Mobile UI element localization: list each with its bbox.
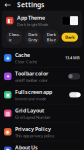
staticText: Classic: [9, 32, 20, 42]
staticText: 13.4 MB: [65, 55, 80, 60]
staticText: ←: [4, 0, 11, 9]
staticText: Privacy Policy: [15, 125, 51, 132]
staticText: Clear Cache: [15, 59, 37, 64]
staticText: immersive mode: [15, 96, 46, 101]
staticText: ◧: [7, 18, 12, 24]
staticText: Grid Layout Number: [15, 114, 51, 120]
staticText: ◈: [6, 55, 10, 61]
staticText: ✦: [6, 73, 10, 79]
staticText: Dark Grey: [28, 32, 37, 42]
staticText: ☗: [5, 147, 10, 150]
staticText: Toolbar color: [15, 70, 48, 77]
staticText: on/off toolbar color: [15, 77, 48, 83]
button[interactable]: Toggle light and dark theme: [62, 16, 78, 25]
button[interactable]: ◉: [0, 123, 84, 141]
button[interactable]: Dark Grey: [24, 30, 41, 44]
button[interactable]: Dark Blue: [43, 30, 59, 44]
button[interactable]: Settings: [17, 0, 44, 9]
button[interactable]: ✦: [0, 67, 84, 85]
staticText: Cache: [15, 51, 30, 58]
staticText: This app privacy policy: [15, 133, 54, 138]
button[interactable]: Classic: [6, 30, 22, 44]
staticText: ◉: [5, 129, 10, 135]
button[interactable]: ◈: [0, 49, 84, 67]
button[interactable]: ▦: [0, 104, 84, 122]
staticText: About Us: [15, 144, 38, 150]
staticText: ▦: [5, 110, 10, 116]
staticText: ▣: [5, 92, 10, 98]
staticText: Grid Layout: [15, 107, 44, 114]
staticText: Dark bright Mode: [17, 22, 48, 27]
staticText: Dark Blue: [47, 32, 56, 42]
staticText: Settings: [17, 0, 44, 9]
staticText: App Theme: [17, 14, 45, 21]
staticText: Fullscreen app: [15, 88, 52, 95]
staticText: Dark: [65, 34, 74, 40]
button[interactable]: ▣: [0, 86, 84, 104]
button[interactable]: Back: [4, 1, 12, 9]
button[interactable]: Dark: [61, 33, 78, 42]
button[interactable]: ☗: [0, 141, 84, 150]
